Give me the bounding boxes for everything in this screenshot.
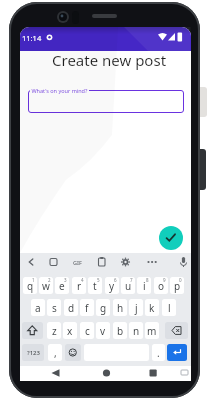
button[interactable]: l <box>162 299 176 316</box>
staticText: g <box>100 301 107 315</box>
staticText: w <box>42 279 50 293</box>
button[interactable]: a <box>31 299 45 316</box>
button[interactable]: v <box>96 322 110 339</box>
button[interactable]: k <box>145 299 159 316</box>
button[interactable]: y <box>105 277 119 294</box>
staticText: , <box>54 346 57 360</box>
staticText: k <box>149 301 155 315</box>
staticText: t <box>93 279 97 293</box>
button[interactable]: z <box>47 322 61 339</box>
staticText: p <box>174 279 181 293</box>
staticText: q <box>27 279 34 293</box>
button[interactable] <box>167 344 187 361</box>
button[interactable]: e <box>55 277 69 294</box>
staticText: l <box>168 301 171 315</box>
staticText: j <box>135 301 138 315</box>
button[interactable] <box>48 366 64 381</box>
staticText: m <box>147 324 157 338</box>
button[interactable]: d <box>64 299 78 316</box>
button[interactable] <box>28 90 184 113</box>
button[interactable]: i <box>137 277 151 294</box>
staticText: r <box>77 279 82 293</box>
staticText: v <box>100 324 106 338</box>
button[interactable] <box>65 344 81 361</box>
button[interactable]: c <box>80 322 94 339</box>
staticText: 1 <box>32 277 35 283</box>
staticText: 4 <box>81 277 84 283</box>
staticText: b <box>117 324 124 338</box>
button[interactable]: j <box>129 299 143 316</box>
button[interactable]: g <box>96 299 110 316</box>
button[interactable]: p <box>170 277 184 294</box>
staticText: Create new post <box>52 50 167 70</box>
staticText: 11:14 <box>22 33 42 43</box>
button[interactable]: o <box>154 277 168 294</box>
button[interactable]: . <box>152 344 165 361</box>
button[interactable]: m <box>145 322 159 339</box>
button[interactable] <box>22 322 43 339</box>
button[interactable]: n <box>129 322 143 339</box>
staticText: 7 <box>130 277 133 283</box>
staticText: s <box>52 301 57 315</box>
staticText: y <box>109 279 115 293</box>
staticText: 3 <box>64 277 67 283</box>
staticText: f <box>85 301 89 315</box>
staticText: GIF <box>73 259 82 266</box>
staticText: i <box>143 279 146 293</box>
button[interactable]: ?123 <box>22 344 44 361</box>
staticText: z <box>52 324 57 338</box>
staticText: . <box>157 346 160 360</box>
staticText: 2 <box>48 277 51 283</box>
staticText: d <box>68 301 75 315</box>
button[interactable]: w <box>39 277 53 294</box>
staticText: 8 <box>146 277 149 283</box>
staticText: n <box>133 324 140 338</box>
button[interactable] <box>159 226 183 250</box>
button[interactable] <box>165 322 188 339</box>
button[interactable]: x <box>63 322 77 339</box>
staticText: What's on your mind? <box>30 87 89 94</box>
staticText: h <box>117 301 124 315</box>
staticText: ?123 <box>27 349 40 357</box>
button[interactable]: u <box>121 277 135 294</box>
staticText: u <box>125 279 132 293</box>
staticText: c <box>85 324 90 338</box>
staticText: x <box>67 324 73 338</box>
button[interactable]: s <box>47 299 61 316</box>
staticText: e <box>59 279 65 293</box>
staticText: 0 <box>179 277 182 283</box>
staticText: o <box>158 279 165 293</box>
button[interactable]: , <box>48 344 62 361</box>
button[interactable]: f <box>80 299 94 316</box>
button[interactable]: r <box>72 277 86 294</box>
button[interactable] <box>146 366 162 381</box>
staticText: 9 <box>163 277 166 283</box>
button[interactable]: GIF <box>73 259 82 266</box>
button[interactable] <box>99 366 115 381</box>
button[interactable]: b <box>113 322 127 339</box>
button[interactable]: h <box>113 299 127 316</box>
button[interactable]: t <box>88 277 102 294</box>
staticText: 5 <box>97 277 100 283</box>
staticText: a <box>35 301 41 315</box>
button[interactable]: q <box>23 277 37 294</box>
staticText: 6 <box>114 277 117 283</box>
